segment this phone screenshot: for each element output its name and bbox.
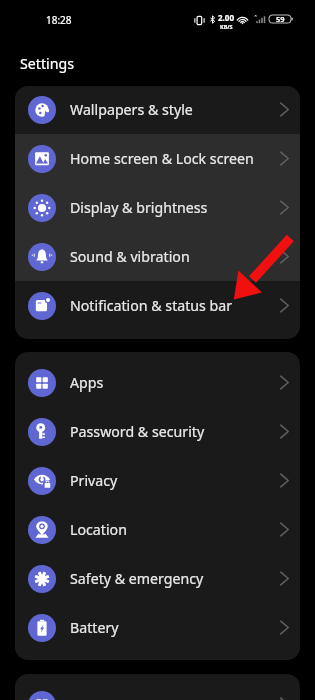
staticText: Location xyxy=(70,520,127,539)
staticText: 18:28 xyxy=(46,13,72,27)
staticText: KB/S xyxy=(220,23,233,30)
button[interactable]: Password & security xyxy=(15,407,300,456)
staticText: Settings xyxy=(20,54,74,73)
button[interactable]: Privacy xyxy=(15,456,300,505)
staticText: Home screen & Lock screen xyxy=(70,149,254,168)
button[interactable]: Display & brightness xyxy=(15,183,300,232)
staticText: Safety & emergency xyxy=(70,569,204,588)
button[interactable]: Apps xyxy=(15,358,300,407)
button[interactable]: Wallpapers & style xyxy=(15,86,300,134)
button[interactable]: Sound & vibration xyxy=(15,232,300,281)
button[interactable]: Notification & status bar xyxy=(15,281,300,330)
staticText: Apps xyxy=(70,373,104,392)
button[interactable]: Home screen & Lock screen xyxy=(15,134,300,183)
staticText: Wallpapers & style xyxy=(70,100,193,119)
staticText: Password & security xyxy=(70,422,205,441)
button[interactable]: Safety & emergency xyxy=(15,554,300,603)
staticText: Sound & vibration xyxy=(70,247,190,266)
staticText: Battery xyxy=(70,618,119,637)
staticText: Privacy xyxy=(70,471,118,490)
staticText: Display & brightness xyxy=(70,198,208,217)
other: Pointer arrow xyxy=(0,0,315,700)
button[interactable]: Battery xyxy=(15,603,300,652)
staticText: Notification & status bar xyxy=(70,296,233,315)
button[interactable]: Storage xyxy=(15,680,300,700)
staticText: 2.00 xyxy=(218,12,234,23)
staticText: 59 xyxy=(276,14,285,24)
button[interactable]: Location xyxy=(15,505,300,554)
